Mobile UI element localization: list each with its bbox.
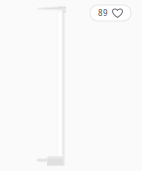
- staticText: 89: [98, 8, 108, 18]
- button[interactable]: 89: [90, 5, 131, 21]
